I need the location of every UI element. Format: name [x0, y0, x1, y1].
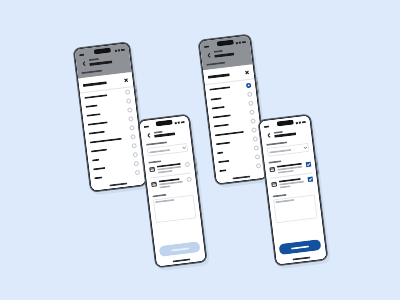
button[interactable] [273, 194, 318, 223]
button[interactable] [269, 161, 312, 176]
button[interactable] [82, 105, 137, 120]
button[interactable] [86, 140, 141, 156]
button[interactable]: Back [145, 131, 152, 139]
button[interactable] [215, 160, 265, 175]
button[interactable] [88, 149, 142, 165]
button[interactable] [208, 107, 259, 122]
button[interactable] [213, 143, 263, 158]
button[interactable] [271, 175, 314, 190]
button[interactable] [85, 132, 140, 147]
button[interactable] [207, 98, 258, 113]
button[interactable] [205, 79, 256, 95]
button[interactable] [209, 116, 260, 131]
button[interactable] [211, 134, 262, 149]
button[interactable] [89, 158, 143, 174]
button[interactable] [149, 161, 191, 176]
button[interactable] [146, 143, 188, 157]
button[interactable] [83, 114, 138, 129]
button[interactable] [151, 176, 192, 190]
button[interactable]: Back [265, 131, 272, 139]
button[interactable] [84, 123, 139, 138]
button[interactable] [153, 194, 196, 223]
button[interactable] [267, 143, 309, 157]
button[interactable]: Close [122, 76, 129, 83]
button[interactable]: Back [80, 59, 88, 67]
button[interactable] [278, 239, 321, 255]
button[interactable] [206, 89, 257, 104]
button[interactable] [159, 241, 201, 257]
button[interactable] [90, 167, 144, 183]
button[interactable]: Back [205, 51, 213, 59]
button[interactable] [80, 87, 135, 102]
button[interactable]: Close [243, 69, 250, 75]
button[interactable] [214, 152, 264, 167]
button[interactable] [81, 96, 136, 111]
button[interactable] [210, 125, 261, 140]
